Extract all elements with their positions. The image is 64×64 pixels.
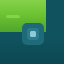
button[interactable] xyxy=(0,0,46,32)
button[interactable]: Open item xyxy=(22,23,44,45)
